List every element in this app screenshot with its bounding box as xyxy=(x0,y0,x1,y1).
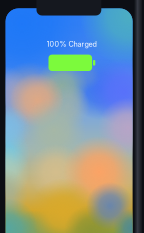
staticText: 100% Charged xyxy=(46,40,96,48)
